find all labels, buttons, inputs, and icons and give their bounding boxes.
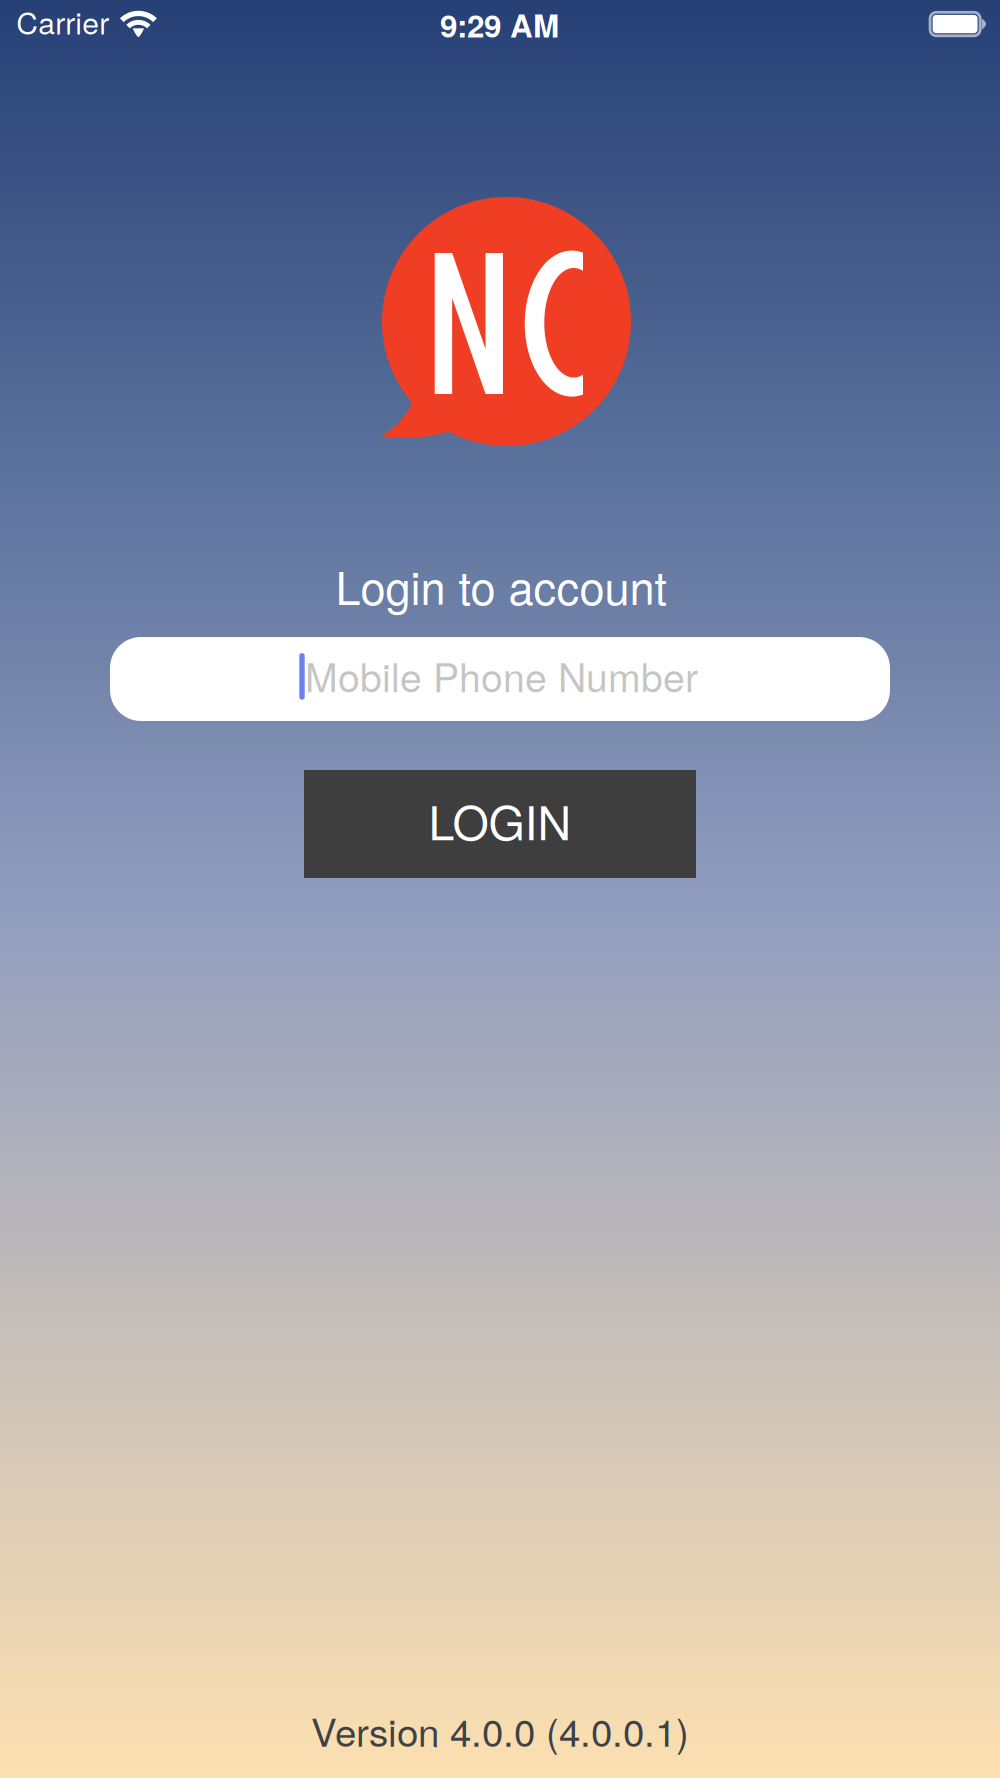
staticText: Mobile Phone Number xyxy=(305,647,698,703)
button[interactable]: LOGIN xyxy=(304,770,696,878)
staticText: Login to account xyxy=(335,553,667,618)
staticText: Carrier xyxy=(16,0,109,43)
staticText: LOGIN xyxy=(428,787,571,853)
staticText: Version 4.0.0 (4.0.0.1) xyxy=(311,1702,689,1758)
staticText: 9:29 AM xyxy=(440,2,559,47)
button[interactable]: Mobile Phone Number xyxy=(110,637,890,721)
